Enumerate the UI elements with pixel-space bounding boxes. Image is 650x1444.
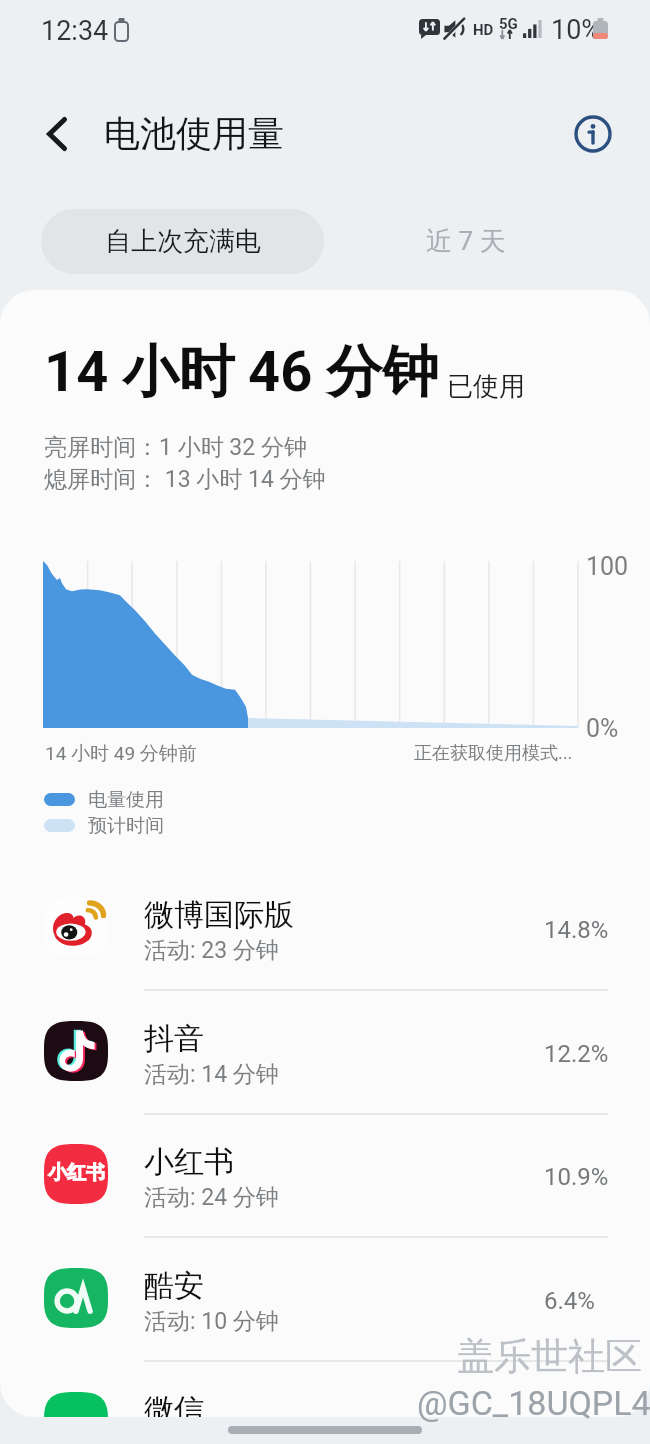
button[interactable]: 自上次充满电 xyxy=(41,209,324,274)
staticText: 14 小时 46 分钟 xyxy=(44,337,439,408)
staticText: 正在获取使用模式... xyxy=(414,742,573,765)
staticText: 电量使用 xyxy=(88,788,164,812)
staticText: 抖音 xyxy=(144,1020,204,1058)
staticText: 已使用 xyxy=(447,370,525,403)
button[interactable]: 微信 xyxy=(0,1362,650,1417)
staticText: HD xyxy=(473,21,494,39)
staticText: 12:34 xyxy=(41,15,109,47)
staticText: 近 7 天 xyxy=(426,225,506,258)
button[interactable]: 微博国际版 xyxy=(0,867,650,987)
staticText: 微博国际版 xyxy=(144,896,294,934)
staticText: 10% xyxy=(551,14,602,46)
staticText: 活动: 24 分钟 xyxy=(144,1183,279,1212)
staticText: 亮屏时间：1 小时 32 分钟 xyxy=(44,433,307,462)
staticText: 活动: 14 分钟 xyxy=(144,1060,279,1089)
button[interactable]: 近 7 天 xyxy=(324,209,607,274)
staticText: 0% xyxy=(586,714,619,743)
staticText: 小红书 xyxy=(48,1161,105,1185)
staticText: 14.8% xyxy=(544,916,609,944)
staticText: 5G xyxy=(499,15,518,33)
button[interactable]: Back xyxy=(26,103,88,165)
staticText: 电池使用量 xyxy=(104,111,284,156)
staticText: 自上次充满电 xyxy=(105,225,261,258)
staticText: 活动: 23 分钟 xyxy=(144,936,279,965)
button[interactable]: Information xyxy=(562,103,624,165)
staticText: 酷安 xyxy=(144,1267,204,1305)
button[interactable]: 小红书 xyxy=(0,1114,650,1234)
staticText: 14 小时 49 分钟前 xyxy=(45,742,197,766)
staticText: 熄屏时间： 13 小时 14 分钟 xyxy=(44,465,326,494)
staticText: 12.2% xyxy=(544,1040,609,1068)
staticText: @GC_18UQPL4 xyxy=(417,1383,650,1423)
staticText: 盖乐世社区 xyxy=(457,1333,642,1380)
button[interactable]: 酷安 xyxy=(0,1238,650,1358)
staticText: 预计时间 xyxy=(88,814,164,838)
staticText: 6.4% xyxy=(544,1287,595,1315)
staticText: 小红书 xyxy=(144,1143,234,1181)
staticText: 100 xyxy=(586,552,629,581)
button[interactable]: 抖音 xyxy=(0,991,650,1111)
staticText: 活动: 10 分钟 xyxy=(144,1307,279,1336)
staticText: 10.9% xyxy=(544,1163,609,1191)
staticText: 微信 xyxy=(144,1391,204,1417)
